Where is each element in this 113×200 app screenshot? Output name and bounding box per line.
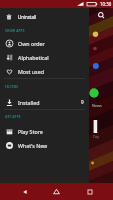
button[interactable]: Installed — [0, 95, 89, 109]
button[interactable]: Search — [94, 8, 109, 23]
button[interactable]: What's New — [0, 138, 89, 152]
button[interactable]: Recents — [81, 183, 98, 200]
staticText: GET APPS — [5, 115, 21, 119]
staticText: FILTERS — [5, 85, 19, 89]
staticText: City — [93, 134, 99, 139]
button[interactable]: Uninstall — [0, 0, 89, 25]
staticText: 9 — [81, 99, 84, 105]
button[interactable]: Most used — [0, 64, 89, 78]
button[interactable]: Home — [48, 183, 65, 200]
button[interactable]: Back — [16, 183, 33, 200]
staticText: SHOW APPS — [5, 29, 25, 33]
staticText: Own order — [18, 40, 45, 47]
staticText: Uninstall — [18, 14, 37, 20]
button[interactable]: Play Store — [0, 124, 89, 138]
button[interactable]: Alphabetical — [0, 50, 89, 64]
staticText: Alphabetical — [18, 54, 49, 61]
staticText: Installed — [18, 99, 40, 106]
staticText: Most used — [18, 68, 44, 75]
staticText: 10:30 — [100, 1, 112, 7]
staticText: News — [92, 103, 102, 108]
staticText: What's New — [18, 142, 48, 149]
staticText: Play Store — [18, 128, 43, 135]
button[interactable]: Own order — [0, 36, 89, 50]
